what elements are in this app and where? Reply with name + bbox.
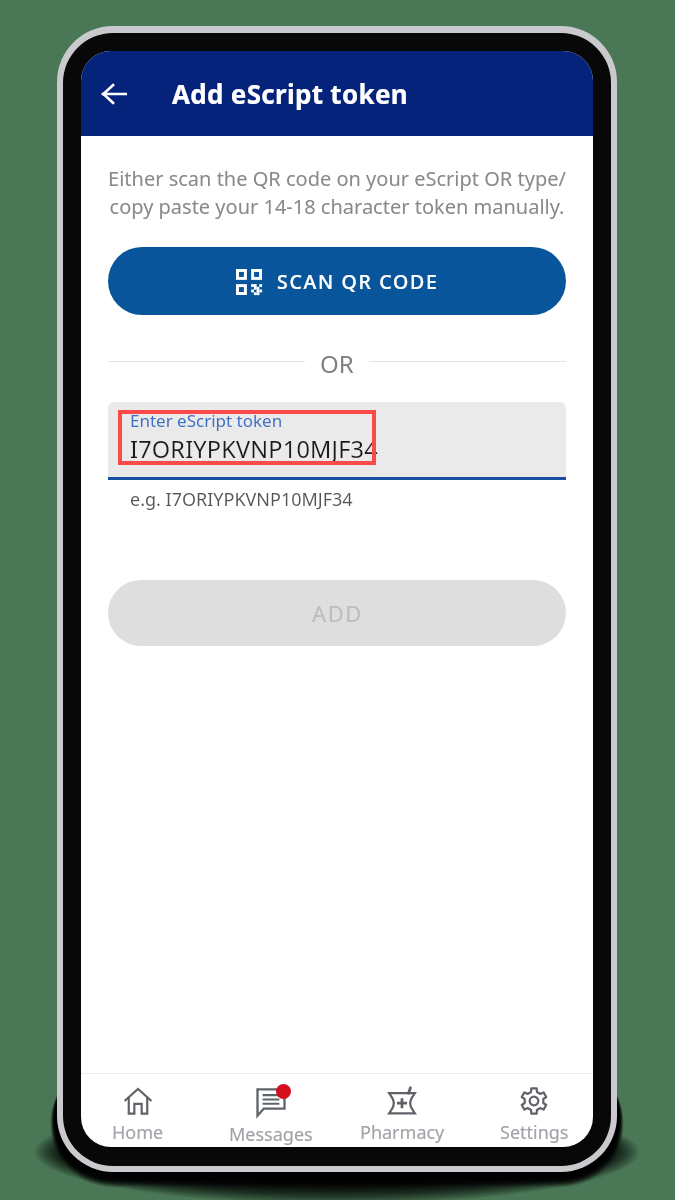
staticText: Either scan the QR code on your eScript … (108, 165, 566, 220)
staticText: Home (112, 1120, 164, 1145)
staticText: Add eScript token (172, 76, 408, 111)
button[interactable]: Enter eScript token (108, 402, 566, 477)
staticText: Messages (229, 1122, 313, 1147)
staticText: e.g. I7ORIYPKVNP10MJF34 (130, 487, 353, 512)
staticText: SCAN QR CODE (277, 268, 439, 295)
staticText: Pharmacy (360, 1120, 445, 1145)
button[interactable]: Back (90, 70, 138, 118)
button[interactable]: Pharmacy (347, 1074, 457, 1147)
button[interactable]: Messages (216, 1074, 326, 1147)
staticText: ADD (312, 598, 363, 628)
button[interactable]: SCAN QR CODE (108, 247, 566, 315)
button[interactable]: Settings (479, 1074, 589, 1147)
staticText: Settings (500, 1120, 569, 1145)
staticText: Enter eScript token (130, 409, 283, 432)
staticText: OR (320, 347, 354, 375)
button[interactable]: ADD (108, 580, 566, 646)
button[interactable]: Home (83, 1074, 193, 1147)
staticText: I7ORIYPKVNP10MJF34 (130, 433, 378, 465)
